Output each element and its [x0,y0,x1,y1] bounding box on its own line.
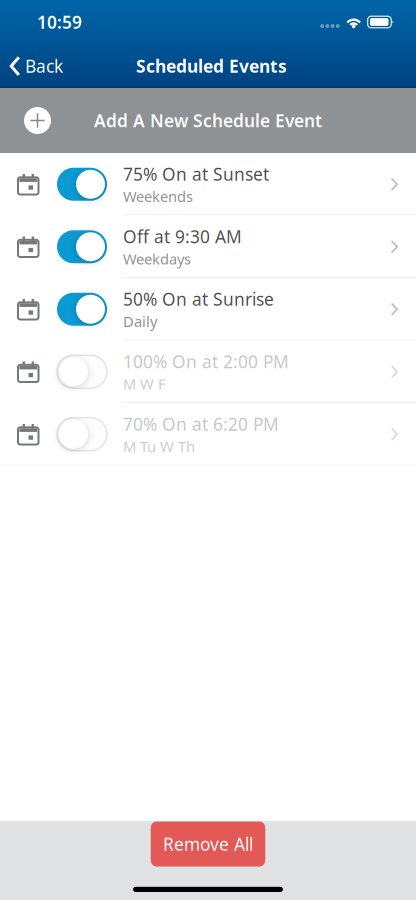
staticText: Weekends [123,186,193,206]
button[interactable]: Add A New Schedule Event [0,88,416,153]
staticText: 100% On at 2:00 PM [123,350,289,373]
staticText: 50% On at Sunrise [123,287,274,310]
button[interactable]: 75% On at Sunset [0,153,416,215]
staticText: 70% On at 6:20 PM [123,412,279,435]
button[interactable]: 100% On at 2:00 PM [0,340,416,403]
button[interactable]: Remove All [151,821,265,866]
staticText: Remove All [163,832,253,855]
staticText: Weekdays [123,249,191,268]
button[interactable]: Back [0,44,73,88]
staticText: Scheduled Events [136,54,287,77]
staticText: 10:59 [37,10,82,33]
staticText: Off at 9:30 AM [123,225,242,248]
button[interactable]: 70% On at 6:20 PM [0,403,416,465]
staticText: M Tu W Th [123,436,195,456]
staticText: Back [25,54,63,77]
staticText: 75% On at Sunset [123,162,269,185]
staticText: Add A New Schedule Event [94,109,322,132]
staticText: M W F [123,374,166,393]
button[interactable]: 50% On at Sunrise [0,278,416,340]
button[interactable]: Off at 9:30 AM [0,215,416,278]
staticText: Daily [123,311,157,331]
